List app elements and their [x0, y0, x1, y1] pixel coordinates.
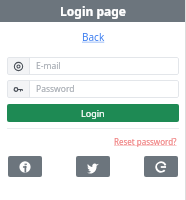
- button[interactable]: Reset password?: [112, 135, 179, 148]
- staticText: Login page: [60, 3, 126, 19]
- other: Email: [7, 57, 29, 75]
- staticText: Reset password?: [114, 136, 177, 147]
- button[interactable]: Sign in with Google: [144, 156, 178, 177]
- staticText: E-mail: [36, 60, 61, 72]
- button[interactable]: Sign in with Facebook: [8, 156, 42, 177]
- button[interactable]: Email: [7, 57, 179, 75]
- button[interactable]: Back: [78, 29, 109, 45]
- staticText: Login: [81, 107, 105, 119]
- other: Password: [7, 80, 29, 98]
- staticText: Back: [82, 30, 105, 44]
- button[interactable]: Sign in with Twitter: [76, 156, 110, 177]
- staticText: Password: [36, 83, 75, 95]
- button[interactable]: Password: [7, 80, 179, 98]
- button[interactable]: Login: [7, 104, 179, 122]
